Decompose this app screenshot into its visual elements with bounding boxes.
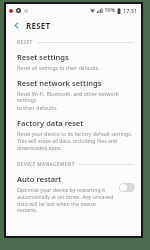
staticText: Reset your device to its factory default… xyxy=(17,130,133,137)
button[interactable]: Back xyxy=(10,19,23,32)
staticText: to their defaults. xyxy=(17,104,58,111)
staticText: automatically at set times. Any unsaved xyxy=(17,193,114,200)
staticText: Factory data reset xyxy=(17,118,84,128)
staticText: This will erase all data, including file… xyxy=(17,137,118,144)
button[interactable]: Auto restart xyxy=(6,169,141,218)
staticText: RESET xyxy=(17,39,33,46)
staticText: Auto restart xyxy=(17,174,62,184)
staticText: data will be lost when the device restar… xyxy=(17,200,116,214)
staticText: Reset all settings to their defaults. xyxy=(17,64,100,71)
button[interactable]: Auto restart toggle, off xyxy=(119,183,135,192)
staticText: Reset settings xyxy=(17,52,69,62)
staticText: Reset network settings xyxy=(17,78,102,88)
staticText: 59% xyxy=(105,7,115,14)
staticText: 17:31 xyxy=(123,7,138,14)
staticText: Reset Wi-Fi, Bluetooth, and other networ… xyxy=(17,90,133,104)
staticText: RESET xyxy=(26,20,51,31)
staticText: downloaded apps. xyxy=(17,144,62,151)
button[interactable]: Reset settings xyxy=(6,47,141,73)
staticText: Optimize your device by restarting it xyxy=(17,186,106,193)
staticText: DEVICE MANAGEMENT xyxy=(17,161,75,168)
button[interactable]: Factory data reset xyxy=(6,113,141,153)
button[interactable]: Reset network settings xyxy=(6,73,141,113)
